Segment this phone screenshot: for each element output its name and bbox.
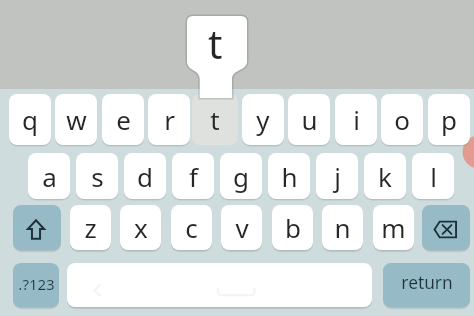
button[interactable]: p	[428, 94, 470, 148]
button[interactable]: m	[373, 205, 414, 253]
button[interactable]: Space	[67, 263, 372, 310]
staticText: i	[353, 102, 360, 137]
staticText: r	[164, 102, 175, 137]
button[interactable]: t	[192, 94, 238, 148]
staticText: a	[42, 159, 57, 194]
staticText: .?123	[18, 274, 55, 294]
staticText: h	[281, 159, 298, 194]
button[interactable]: x	[120, 205, 161, 253]
staticText: d	[137, 159, 153, 194]
button[interactable]: c	[171, 205, 212, 253]
staticText: t	[210, 102, 220, 137]
staticText: b	[285, 210, 301, 245]
staticText: f	[189, 159, 198, 194]
button[interactable]: j	[316, 153, 358, 202]
button[interactable]: d	[124, 153, 166, 202]
button[interactable]: v	[221, 205, 262, 253]
staticText: e	[116, 102, 131, 137]
button[interactable]: s	[76, 153, 118, 202]
staticText: g	[233, 159, 249, 194]
staticText: c	[185, 210, 198, 245]
button[interactable]: i	[335, 94, 377, 148]
button[interactable]: q	[9, 94, 51, 148]
button[interactable]: a	[28, 153, 70, 202]
button[interactable]: n	[322, 205, 363, 253]
button[interactable]: o	[381, 94, 423, 148]
staticText: p	[441, 102, 457, 137]
button[interactable]: g	[220, 153, 262, 202]
button[interactable]: e	[102, 94, 144, 148]
button[interactable]: l	[412, 153, 454, 202]
button[interactable]: f	[172, 153, 214, 202]
button[interactable]: w	[55, 94, 97, 148]
button[interactable]: k	[364, 153, 406, 202]
staticText: s	[91, 159, 104, 194]
staticText: return	[401, 271, 453, 295]
button[interactable]: Backspace	[422, 205, 470, 253]
staticText: j	[334, 159, 341, 194]
button[interactable]: return	[383, 263, 470, 310]
staticText: y	[256, 102, 270, 137]
staticText: v	[235, 210, 249, 245]
staticText: l	[430, 159, 437, 194]
button[interactable]: Shift	[13, 205, 61, 253]
staticText: w	[66, 102, 87, 137]
button[interactable]: .?123	[13, 263, 59, 310]
staticText: m	[381, 210, 406, 245]
staticText: n	[334, 210, 351, 245]
staticText: t	[208, 16, 223, 70]
staticText: u	[301, 102, 318, 137]
staticText: k	[378, 159, 392, 194]
button[interactable]: y	[242, 94, 284, 148]
button[interactable]: z	[70, 205, 111, 253]
staticText: z	[84, 210, 97, 245]
staticText: o	[394, 102, 410, 137]
button[interactable]: r	[148, 94, 190, 148]
button[interactable]: h	[268, 153, 310, 202]
staticText: q	[22, 102, 38, 137]
staticText: x	[134, 210, 148, 245]
button[interactable]: u	[288, 94, 330, 148]
button[interactable]: b	[272, 205, 313, 253]
